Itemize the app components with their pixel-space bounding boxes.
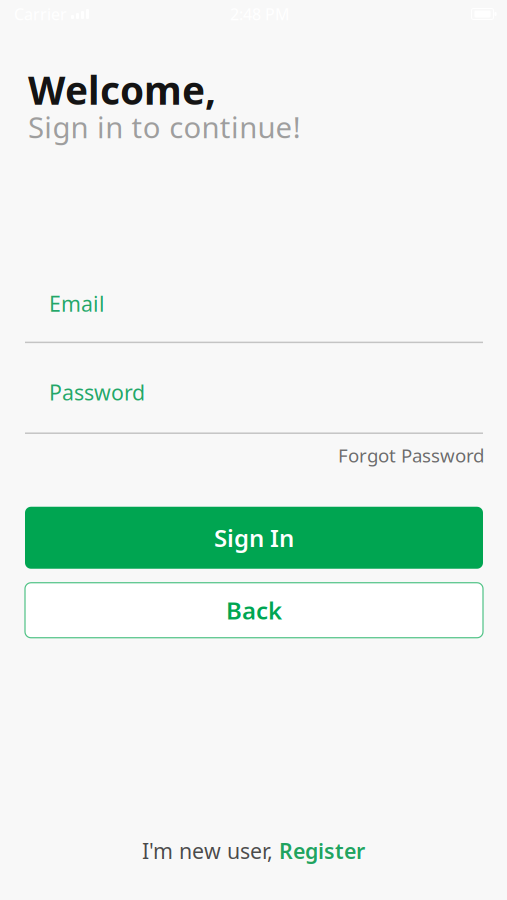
staticText: Register	[279, 837, 365, 865]
button[interactable]: Register	[279, 837, 365, 865]
staticText: I'm new user,	[142, 837, 279, 865]
button[interactable]: Forgot Password	[338, 443, 484, 468]
button[interactable]: Back	[25, 583, 483, 638]
staticText: Welcome,	[28, 64, 216, 115]
staticText: Sign in to continue!	[28, 107, 301, 146]
button[interactable]: Sign In	[25, 507, 483, 569]
staticText: Forgot Password	[338, 443, 484, 468]
staticText: Password	[49, 378, 145, 406]
staticText: Email	[49, 289, 105, 318]
staticText: Back	[226, 594, 282, 626]
button[interactable]: Email	[0, 289, 507, 343]
button[interactable]: Password	[0, 378, 507, 434]
staticText: Sign In	[214, 522, 294, 554]
